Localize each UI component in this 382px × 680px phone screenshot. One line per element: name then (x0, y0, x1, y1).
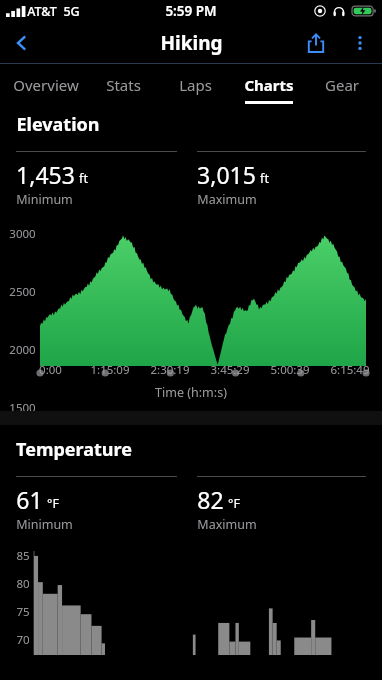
staticText: 5G (63, 3, 80, 20)
staticText: Minimum (16, 516, 73, 533)
staticText: 70 (16, 632, 30, 648)
staticText: 1500 (9, 400, 36, 416)
staticText: 3:45:29 (210, 362, 250, 378)
staticText: 61 (16, 484, 43, 515)
staticText: Gear (325, 75, 359, 95)
staticText: Elevation (16, 112, 100, 137)
staticText: Hiking (160, 30, 223, 56)
staticText: 3000 (9, 226, 36, 242)
staticText: 2500 (9, 284, 36, 300)
staticText: Time (h:m:s) (155, 384, 227, 401)
staticText: Charts (244, 75, 294, 95)
button[interactable]: Charts (232, 64, 305, 106)
button[interactable]: More options (338, 22, 382, 64)
staticText: 75 (16, 604, 30, 620)
staticText: 3,015 (197, 159, 256, 190)
staticText: 6:15:49 (330, 362, 370, 378)
staticText: 2:30:19 (150, 362, 190, 378)
staticText: 5:59 PM (165, 2, 217, 20)
button[interactable]: Overview (4, 64, 87, 106)
button[interactable]: Share (294, 22, 338, 64)
staticText: 1,453 (16, 159, 75, 190)
staticText: Maximum (197, 516, 257, 533)
button[interactable]: Back (0, 22, 44, 64)
staticText: °F (228, 495, 240, 512)
staticText: Maximum (197, 191, 257, 208)
staticText: ft (260, 170, 269, 187)
staticText: 85 (16, 548, 30, 564)
staticText: Stats (106, 75, 141, 95)
staticText: ft (79, 170, 88, 187)
staticText: Overview (13, 75, 79, 95)
staticText: 82 (197, 484, 224, 515)
staticText: 5:00:39 (270, 362, 310, 378)
staticText: 1:15:09 (90, 362, 130, 378)
staticText: 2000 (9, 342, 36, 358)
staticText: 0:00 (39, 362, 62, 378)
button[interactable]: Stats (87, 64, 159, 106)
staticText: 80 (16, 576, 30, 592)
staticText: AT&T (27, 3, 57, 20)
button[interactable]: Gear (305, 64, 378, 106)
staticText: °F (47, 495, 59, 512)
button[interactable]: Laps (159, 64, 232, 106)
staticText: Minimum (16, 191, 73, 208)
staticText: Temperature (16, 437, 132, 462)
staticText: Laps (179, 75, 212, 95)
